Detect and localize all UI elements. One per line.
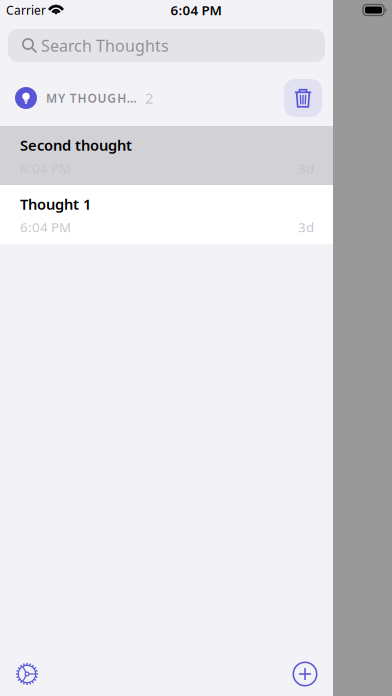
staticText: Search Thoughts [41,35,169,56]
staticText: 6:04 PM [20,218,71,236]
staticText: 3d [298,218,314,236]
staticText: MY THOUGHTS [46,90,142,106]
staticText: 6:04 PM [20,159,71,177]
button[interactable]: Second thought [0,126,333,185]
button[interactable]: Settings [5,652,49,696]
staticText: Thought 1 [20,194,91,214]
staticText: Second thought [20,135,132,155]
staticText: 2 [145,88,153,108]
staticText: 3d [298,159,314,177]
button[interactable]: Delete all thoughts [284,79,322,117]
staticText: Carrier [6,2,46,18]
button[interactable]: Thought 1 [0,185,333,244]
button[interactable]: New Thought [283,652,327,696]
staticText: 6:04 PM [170,1,221,19]
